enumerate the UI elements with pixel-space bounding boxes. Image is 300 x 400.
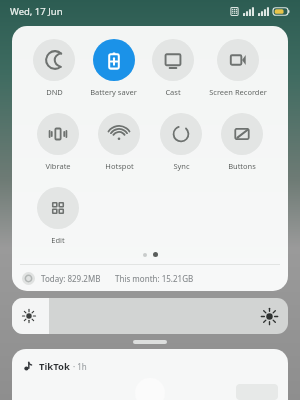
- staticText: Battery saver: [90, 87, 137, 97]
- staticText: Screen Recorder: [209, 87, 267, 97]
- staticText: DND: [46, 87, 63, 97]
- staticText: TikTok: [39, 360, 70, 373]
- button[interactable]: Today: 829.2MB: [12, 265, 288, 291]
- button[interactable]: Cast: [152, 37, 194, 97]
- button[interactable]: Brightness: [12, 298, 288, 334]
- staticText: Today: 829.2MB: [41, 273, 101, 284]
- staticText: Vibrate: [45, 161, 71, 171]
- button[interactable]: Edit: [37, 185, 79, 245]
- staticText: Hotspot: [105, 161, 134, 171]
- button[interactable]: Vibrate: [37, 111, 79, 171]
- button[interactable]: DND: [33, 37, 75, 97]
- staticText: Edit: [51, 235, 65, 245]
- staticText: Sync: [173, 161, 190, 171]
- button[interactable]: Sync: [160, 111, 202, 171]
- staticText: This month: 15.21GB: [115, 273, 194, 284]
- button[interactable]: Battery saver: [90, 37, 137, 97]
- button[interactable]: Buttons: [221, 111, 263, 171]
- staticText: · 1h: [73, 361, 87, 372]
- staticText: Cast: [165, 87, 181, 97]
- button[interactable]: TikTok: [12, 349, 288, 400]
- button[interactable]: Screen Recorder: [209, 37, 267, 97]
- button[interactable]: Hotspot: [98, 111, 140, 171]
- staticText: Wed, 17 Jun: [10, 5, 63, 18]
- staticText: Buttons: [228, 161, 256, 171]
